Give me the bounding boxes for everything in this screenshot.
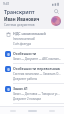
staticText: Особенности [13,51,37,56]
staticText: Заказ 41 [13,86,28,91]
staticText: Система компании — Заказчик ОАО [13,72,61,76]
button[interactable]: Особенности перевозчика [0,64,64,83]
button[interactable]: Menu [45,107,59,114]
button[interactable]: Profile [51,16,61,26]
button[interactable]: Home [6,107,20,114]
staticText: (неоплаченный) [13,37,35,41]
staticText: НДС начисленный [13,31,46,36]
staticText: Система документов [4,23,35,27]
staticText: Счёт-фактура [13,42,32,46]
button[interactable]: НДС начисленный [0,29,64,48]
staticText: Особенности перевозчика [13,66,60,71]
staticText: Заказ — Доставка — Товары и услуги [13,92,61,96]
staticText: 9:41 [3,2,10,6]
button[interactable]: Documents [25,107,39,114]
staticText: Документ 2 позиции [13,97,42,101]
button[interactable]: Заказ 41 [0,84,64,103]
staticText: Документ работы [13,77,38,81]
staticText: Иван Иванович [4,16,40,22]
button[interactable]: Search [53,8,60,15]
staticText: Заказ — Документ — АВС компания [13,57,61,61]
staticText: Транскрипт [4,8,35,15]
button[interactable]: Особенности [0,49,64,63]
button[interactable]: Иван Иванович [0,15,64,27]
